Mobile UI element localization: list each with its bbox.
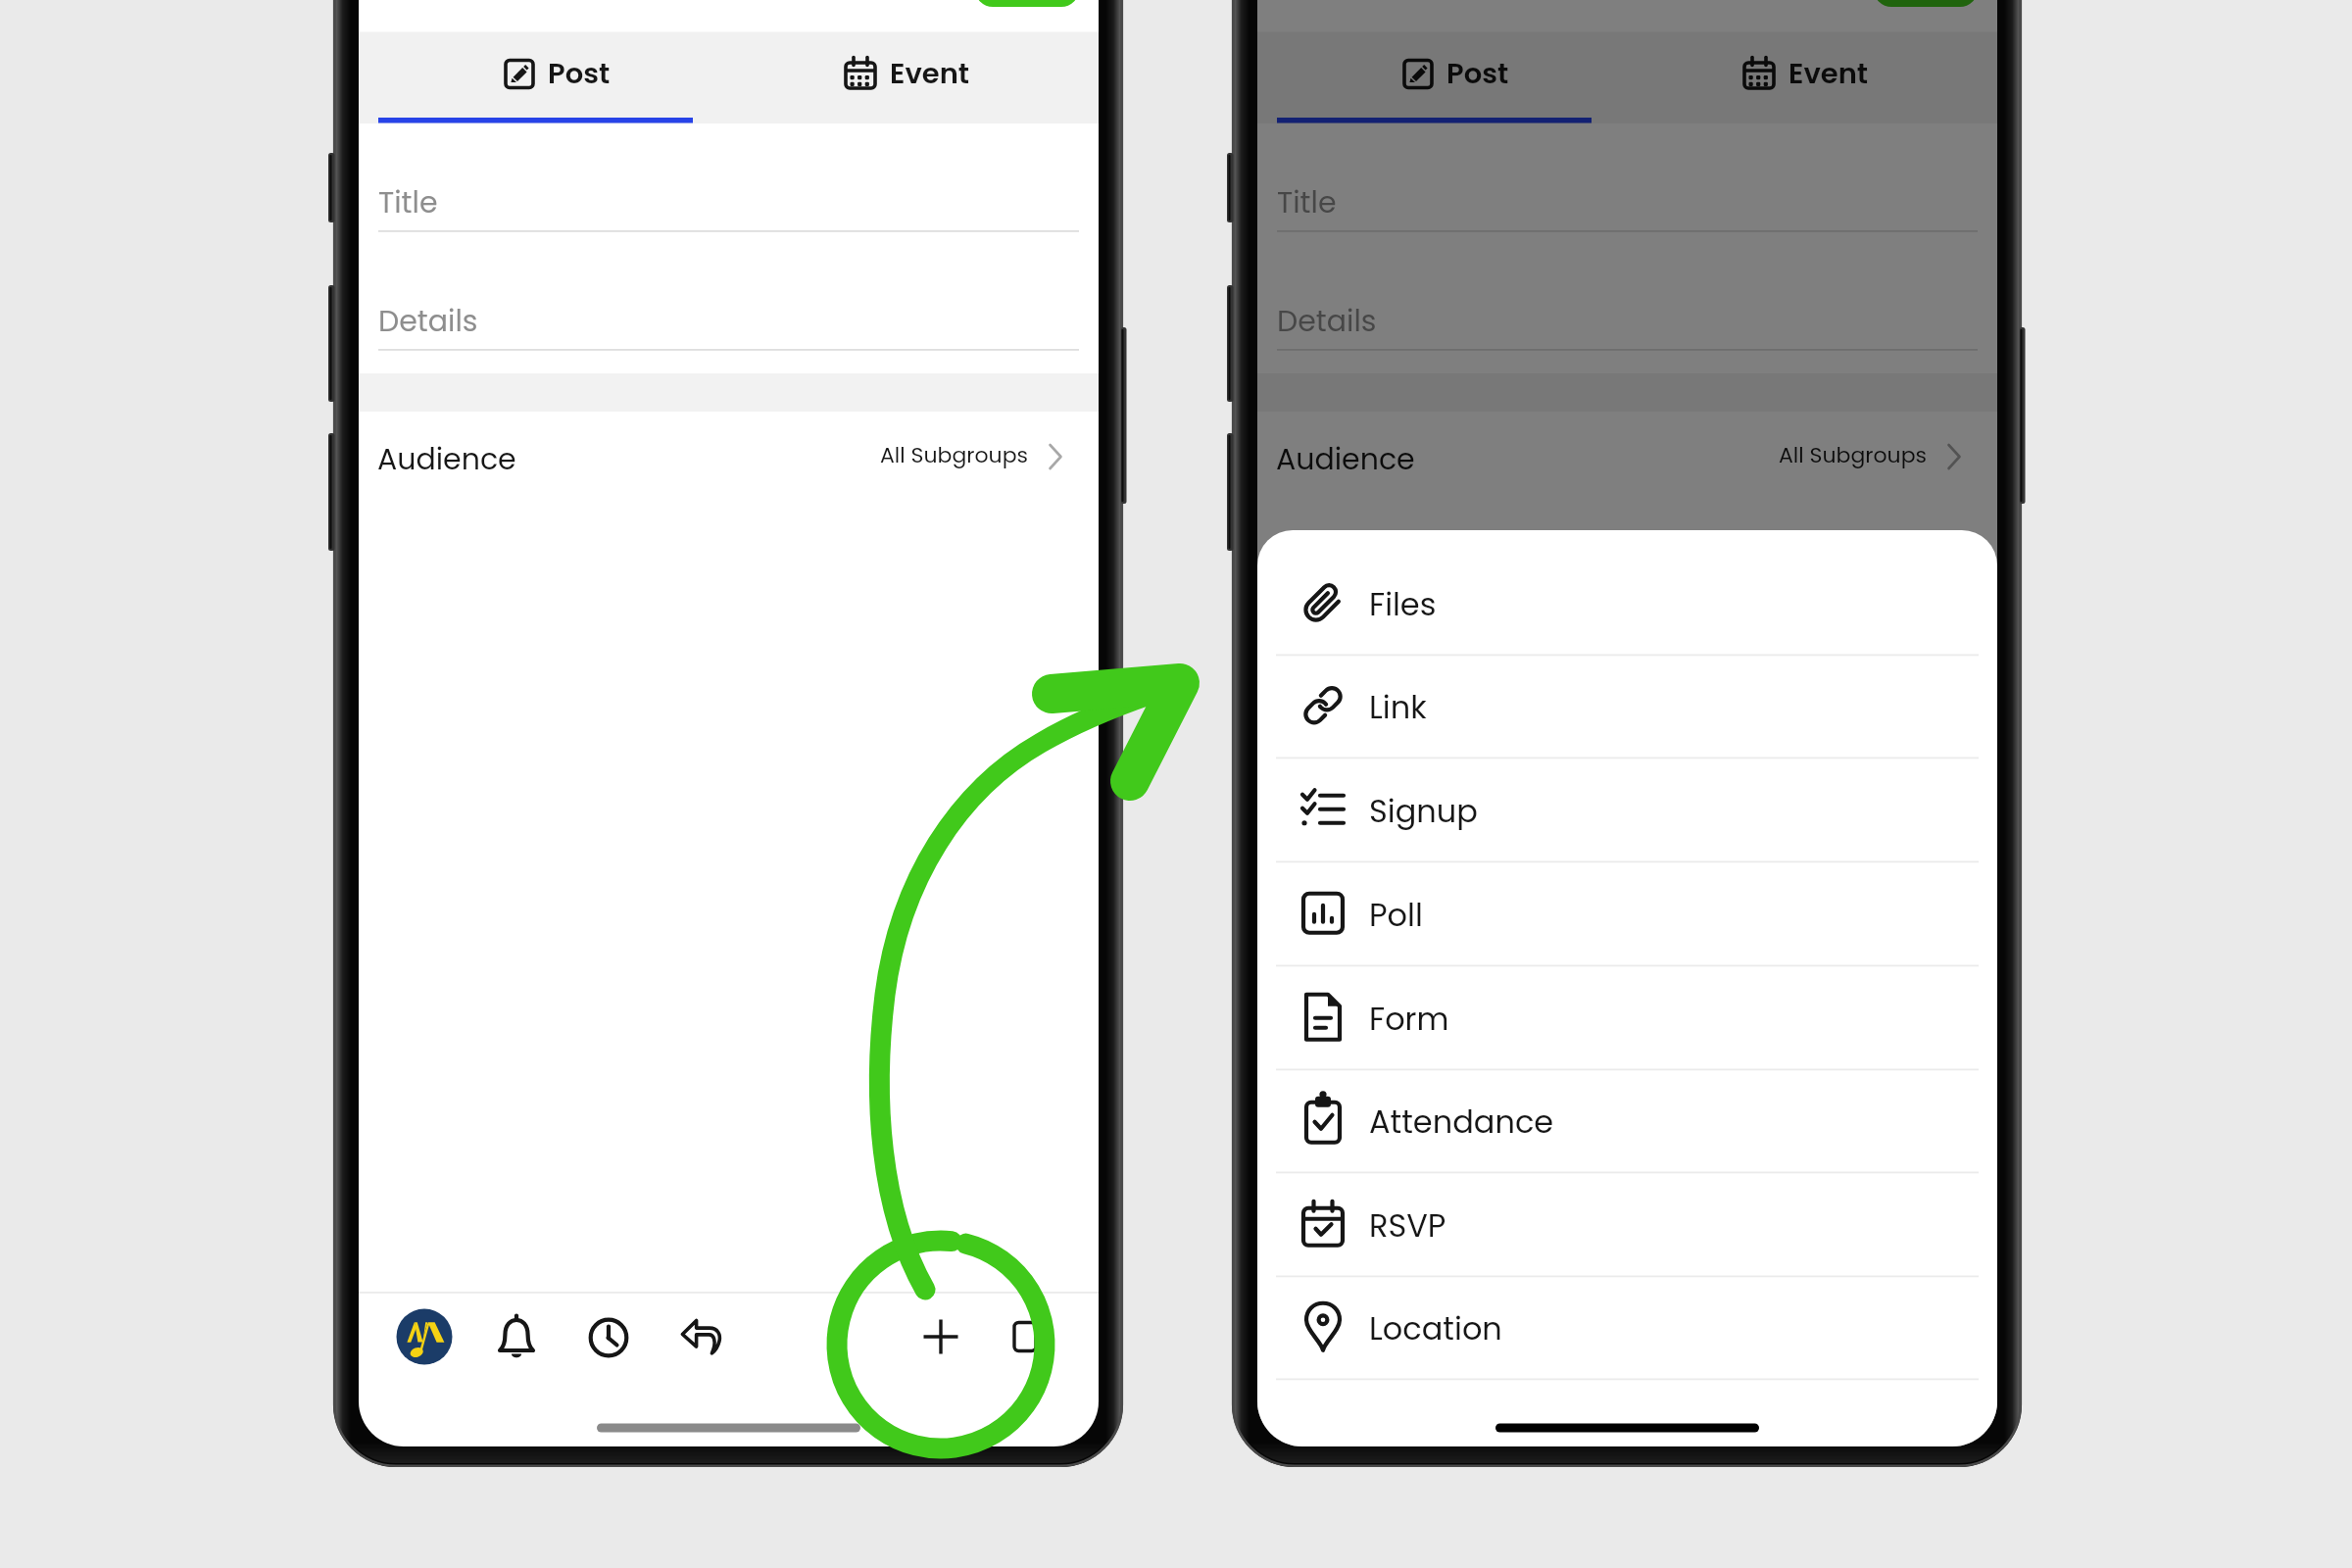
staticText: Signup [1369,789,1478,833]
staticText: Event [1788,54,1869,94]
button[interactable]: Event tab [728,31,1099,123]
button[interactable]: Title field [378,147,1079,231]
button[interactable]: Location [1257,1275,1997,1379]
button[interactable]: Link [1257,654,1997,758]
button[interactable]: Profile [1284,1298,1362,1376]
button[interactable]: Audience, All Subgroups [359,412,1099,504]
staticText: All Subgroups [1640,440,1927,470]
staticText: Post [1446,54,1509,94]
button[interactable]: Attendance [1257,1068,1997,1172]
button[interactable]: Recent [1468,1298,1546,1376]
staticText: Form [1369,997,1449,1041]
staticText: Details [378,301,478,342]
button[interactable]: Audience, All Subgroups [1257,412,1997,504]
button[interactable]: Files [1257,551,1997,655]
button[interactable]: Details field [378,266,1079,350]
staticText: Event [890,54,970,94]
button[interactable]: Post tab [1257,31,1627,123]
button[interactable]: Signup [1257,758,1997,861]
staticText: Attendance [1369,1100,1554,1144]
staticText: Title [1277,182,1337,223]
staticText: Post [548,54,611,94]
staticText: Audience [1276,439,1415,480]
button[interactable]: Notifications [1376,1298,1454,1376]
button[interactable]: Form [1257,965,1997,1069]
staticText: All Subgroups [741,440,1028,470]
staticText: Poll [1369,893,1423,937]
staticText: Link [1369,685,1427,729]
staticText: Title [378,182,438,223]
button[interactable]: Event tab [1627,31,1997,123]
button[interactable]: Reply [662,1298,741,1376]
staticText: RSVP [1369,1203,1446,1248]
button[interactable]: Details field [1277,266,1978,350]
button[interactable]: RSVP [1257,1172,1997,1276]
button[interactable]: Devices [986,1298,1064,1376]
button[interactable]: Recent [569,1298,648,1376]
staticText: Location [1369,1306,1502,1350]
button[interactable]: Notifications [477,1298,556,1376]
staticText: Details [1277,301,1377,342]
staticText: Audience [377,439,516,480]
button[interactable]: Poll [1257,861,1997,965]
button[interactable]: Create [902,1298,980,1376]
button[interactable]: Profile [385,1298,464,1376]
button[interactable]: Post tab [359,31,728,123]
button[interactable]: Title field [1277,147,1978,231]
staticText: Files [1369,582,1437,626]
